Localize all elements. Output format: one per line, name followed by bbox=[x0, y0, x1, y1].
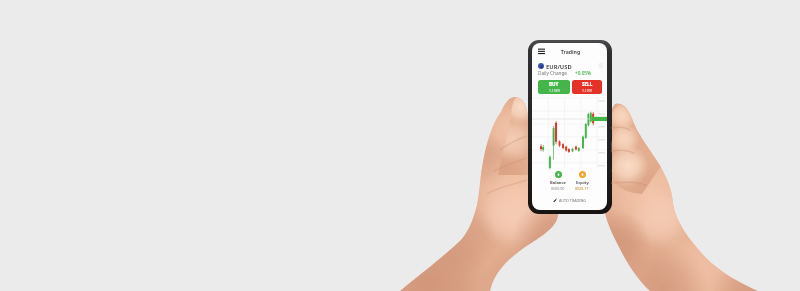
button[interactable]: SELL bbox=[572, 80, 602, 94]
button[interactable]: Menu bbox=[538, 48, 545, 54]
staticText: 1.1089 bbox=[549, 88, 560, 93]
staticText: +0.05% bbox=[575, 70, 591, 76]
staticText: 1.1091 bbox=[582, 88, 593, 93]
button[interactable]: AUTO TRADING bbox=[532, 195, 607, 205]
staticText: Trading bbox=[533, 48, 607, 55]
staticText: Daily Change bbox=[538, 70, 567, 76]
staticText: EUR/USD bbox=[546, 63, 572, 71]
staticText: $520.17 bbox=[575, 186, 589, 191]
button[interactable]: Balance bbox=[547, 171, 569, 191]
button[interactable]: Equity bbox=[571, 171, 593, 191]
button[interactable]: Info bbox=[598, 63, 603, 68]
button[interactable]: BUY bbox=[538, 80, 570, 94]
staticText: $500.00 bbox=[551, 186, 565, 191]
staticText: Equity bbox=[576, 180, 589, 186]
staticText: AUTO TRADING bbox=[559, 198, 586, 203]
staticText: Balance bbox=[550, 180, 567, 186]
staticText: SELL bbox=[582, 81, 593, 87]
staticText: BUY bbox=[549, 81, 559, 87]
